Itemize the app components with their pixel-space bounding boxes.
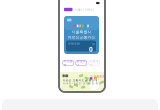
staticText: 이용내역	[90, 60, 99, 66]
staticText: 카드등록	[64, 60, 73, 66]
staticText: 잔액조회	[68, 42, 80, 45]
staticText: 9:41	[103, 2, 110, 5]
button[interactable]: 공지	[60, 72, 104, 92]
staticText: 어르신교통카드	[67, 35, 95, 40]
staticText: 공지	[64, 72, 67, 79]
staticText: 서울특별시	[71, 29, 91, 34]
button[interactable]: 카드등록	[62, 60, 74, 66]
staticText: 원	[92, 42, 95, 45]
button[interactable]: Seoul city logo	[64, 8, 72, 11]
button[interactable]: 이용내역	[88, 60, 100, 66]
staticText: 이벤트	[90, 75, 99, 78]
staticText: 자세한 내용은 공지사항 확인	[62, 82, 101, 85]
staticText: 서울시 어르신	[75, 8, 94, 11]
button[interactable]: 충전하기	[75, 60, 87, 66]
staticText: 진행중	[96, 75, 105, 78]
staticText: 어르신 교통카드 이용안내	[62, 79, 97, 82]
staticText: 0	[89, 45, 93, 54]
staticText: 충전하기	[77, 60, 86, 66]
button[interactable]: 서울특별시	[64, 16, 99, 54]
